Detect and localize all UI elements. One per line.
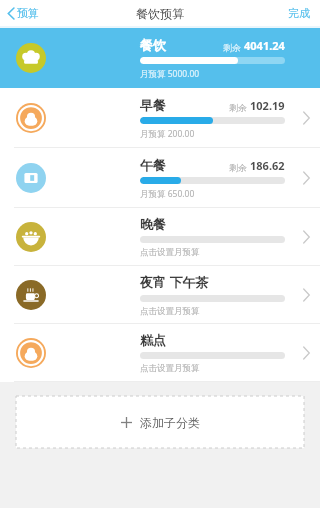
button[interactable]: 糕点	[0, 324, 320, 382]
staticText: 剩余	[229, 161, 250, 173]
staticText: 剩余	[223, 41, 244, 53]
button[interactable]: 早餐	[0, 88, 320, 148]
staticText: 186.62	[250, 158, 285, 173]
staticText: 月预算 200.00	[140, 128, 195, 140]
staticText: 餐饮	[140, 37, 166, 53]
button[interactable]: 晚餐	[0, 208, 320, 266]
staticText: 早餐	[140, 97, 166, 113]
button[interactable]: 完成	[278, 3, 320, 23]
other: 查看详情	[303, 347, 310, 359]
staticText: 剩余	[229, 101, 250, 113]
button[interactable]: 预算	[6, 3, 41, 23]
staticText: 点击设置月预算	[140, 363, 200, 374]
staticText: 月预算 5000.00	[140, 68, 200, 80]
staticText: 月预算 650.00	[140, 188, 195, 200]
other: 查看详情	[303, 112, 310, 124]
staticText: 夜宵 下午茶	[140, 273, 209, 291]
button[interactable]: 餐饮	[0, 28, 320, 88]
staticText: 4041.24	[244, 38, 285, 53]
button[interactable]: 夜宵 下午茶	[0, 266, 320, 324]
staticText: 添加子分类	[140, 415, 200, 430]
button[interactable]: 午餐	[0, 148, 320, 208]
staticText: 糕点	[140, 332, 166, 348]
other: 查看详情	[303, 172, 310, 184]
other: 查看详情	[303, 231, 310, 243]
staticText: 点击设置月预算	[140, 306, 200, 317]
staticText: 102.19	[250, 98, 285, 113]
staticText: 餐饮预算	[136, 6, 184, 21]
staticText: 预算	[17, 6, 39, 20]
staticText: 点击设置月预算	[140, 247, 200, 258]
other: 查看详情	[303, 289, 310, 301]
staticText: 午餐	[140, 157, 166, 173]
staticText: 晚餐	[140, 216, 166, 232]
button[interactable]: 添加子分类	[16, 396, 304, 448]
